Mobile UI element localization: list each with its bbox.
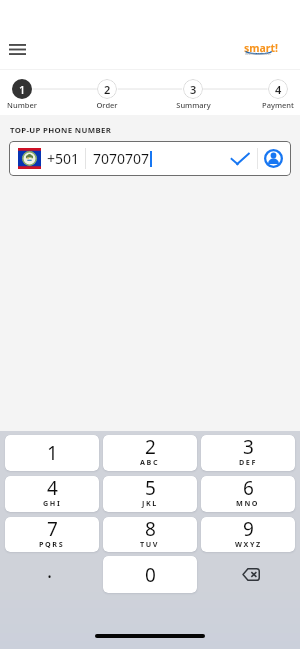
button[interactable]: 4 bbox=[268, 70, 288, 115]
staticText: ABC bbox=[140, 457, 160, 467]
staticText: 8 bbox=[145, 517, 156, 542]
staticText: 1 bbox=[47, 440, 58, 466]
staticText: WXYZ bbox=[235, 539, 262, 548]
button[interactable]: 1 bbox=[12, 70, 32, 115]
button[interactable]: 0 bbox=[103, 556, 197, 593]
button[interactable]: Menu bbox=[2, 34, 32, 64]
button[interactable]: Backspace bbox=[201, 556, 295, 593]
staticText: 1 bbox=[19, 82, 26, 97]
staticText: 4 bbox=[275, 82, 282, 97]
staticText: Number bbox=[7, 100, 37, 110]
staticText: 6 bbox=[243, 476, 254, 501]
staticText: 5 bbox=[145, 476, 156, 501]
button[interactable]: 2 bbox=[103, 435, 197, 471]
button[interactable]: 2 bbox=[97, 70, 117, 115]
staticText: 3 bbox=[243, 435, 254, 460]
button[interactable]: 8 bbox=[103, 517, 197, 552]
staticText: Summary bbox=[176, 100, 211, 110]
button[interactable]: 6 bbox=[201, 476, 295, 512]
staticText: 2 bbox=[145, 435, 156, 460]
staticText: 7070707 bbox=[93, 149, 150, 168]
staticText: DEF bbox=[239, 457, 258, 467]
button[interactable]: 5 bbox=[103, 476, 197, 512]
button[interactable]: Choose contact bbox=[264, 149, 283, 168]
staticText: 2 bbox=[104, 82, 111, 97]
button[interactable]: 4 bbox=[5, 476, 99, 512]
staticText: smart! bbox=[244, 41, 279, 55]
staticText: +501 bbox=[47, 149, 80, 168]
staticText: 7 bbox=[47, 517, 58, 542]
staticText: 0 bbox=[145, 562, 156, 588]
button[interactable]: +501 bbox=[9, 141, 291, 176]
button[interactable]: 1 bbox=[5, 435, 99, 471]
staticText: Order bbox=[96, 100, 118, 110]
button[interactable]: . bbox=[5, 556, 99, 593]
staticText: GHI bbox=[43, 498, 62, 508]
staticText: TOP-UP PHONE NUMBER bbox=[10, 125, 112, 136]
button[interactable]: 3 bbox=[201, 435, 295, 471]
staticText: 9 bbox=[243, 517, 254, 542]
staticText: . bbox=[47, 558, 53, 584]
staticText: MNO bbox=[236, 498, 260, 508]
staticText: internet sin limites bbox=[245, 52, 271, 56]
staticText: 4 bbox=[47, 476, 58, 501]
staticText: Payment bbox=[262, 100, 294, 110]
staticText: 3 bbox=[190, 82, 197, 97]
button[interactable]: 7 bbox=[5, 517, 99, 552]
staticText: JKL bbox=[142, 498, 158, 508]
staticText: TUV bbox=[140, 539, 160, 548]
button[interactable]: 9 bbox=[201, 517, 295, 552]
staticText: PQRS bbox=[39, 539, 65, 548]
button[interactable]: 3 bbox=[183, 70, 203, 115]
